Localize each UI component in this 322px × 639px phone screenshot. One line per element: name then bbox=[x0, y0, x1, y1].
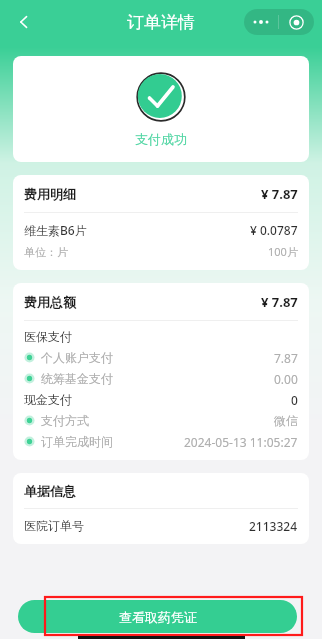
staticText: ¥ 7.87 bbox=[261, 293, 298, 311]
staticText: 7.87 bbox=[274, 350, 298, 366]
staticText: 统筹基金支付 bbox=[41, 371, 113, 386]
button[interactable]: More bbox=[244, 9, 278, 35]
button[interactable]: Back bbox=[6, 4, 42, 40]
staticText: 微信 bbox=[274, 413, 298, 428]
staticText: 个人账户支付 bbox=[41, 350, 113, 365]
staticText: 100片 bbox=[268, 244, 298, 259]
staticText: 维生素B6片 bbox=[24, 222, 87, 238]
staticText: 0.00 bbox=[274, 371, 298, 387]
staticText: 支付成功 bbox=[135, 131, 187, 147]
staticText: 费用总额 bbox=[24, 294, 76, 310]
staticText: 2024-05-13 11:05:27 bbox=[184, 434, 298, 450]
staticText: ¥ 7.87 bbox=[261, 185, 298, 203]
staticText: 单据信息 bbox=[24, 483, 76, 499]
staticText: 单位：片 bbox=[24, 245, 68, 259]
staticText: 支付方式 bbox=[41, 413, 89, 428]
button[interactable]: 查看取药凭证 bbox=[18, 600, 297, 633]
staticText: 费用明细 bbox=[24, 186, 76, 202]
staticText: ¥ 0.0787 bbox=[250, 222, 298, 238]
staticText: 订单详情 bbox=[127, 12, 195, 33]
staticText: 查看取药凭证 bbox=[119, 609, 197, 625]
staticText: 订单完成时间 bbox=[41, 434, 113, 449]
staticText: 医院订单号 bbox=[24, 518, 84, 533]
staticText: 2113324 bbox=[249, 518, 298, 534]
button[interactable]: Close bbox=[279, 9, 314, 35]
staticText: 0 bbox=[291, 392, 298, 408]
staticText: 现金支付 bbox=[24, 392, 72, 407]
staticText: 医保支付 bbox=[24, 329, 72, 344]
